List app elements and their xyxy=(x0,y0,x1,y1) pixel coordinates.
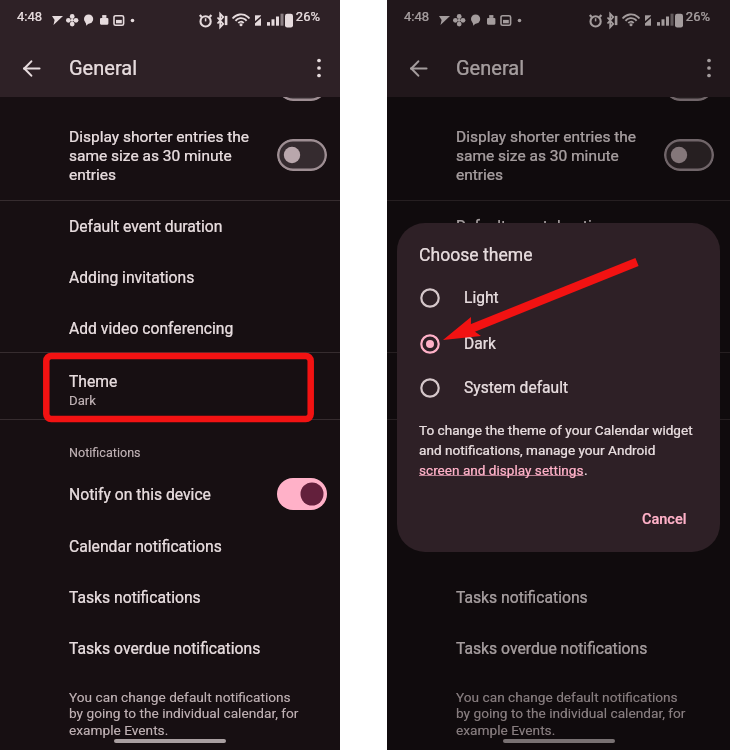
staticText: Dark xyxy=(69,393,96,408)
staticText: Adding invitations xyxy=(456,268,582,286)
button[interactable]: Tasks notifications xyxy=(387,573,730,624)
staticText: Tasks overdue notifications xyxy=(456,639,648,657)
button[interactable]: Default event duration xyxy=(387,201,730,252)
button[interactable]: Theme xyxy=(387,353,730,421)
staticText: Calendar notifications xyxy=(69,537,222,555)
staticText: Add video conferencing xyxy=(69,319,234,337)
staticText: Default event duration xyxy=(456,217,610,235)
staticText: Theme xyxy=(69,372,118,390)
button[interactable]: Add video conferencing xyxy=(387,303,730,353)
staticText: 26% xyxy=(387,9,710,24)
button[interactable]: Back xyxy=(7,44,55,92)
staticText: Display shorter entries the same size as… xyxy=(456,128,642,184)
staticText: General xyxy=(69,56,138,79)
staticText: Default event duration xyxy=(69,217,223,235)
staticText: Adding invitations xyxy=(69,268,195,286)
staticText: Notifications xyxy=(69,445,141,460)
button[interactable]: Light xyxy=(397,276,720,320)
button[interactable]: Default event duration xyxy=(0,201,340,252)
button[interactable]: Toggle off xyxy=(664,69,714,101)
button[interactable]: screen and display settings xyxy=(419,462,584,478)
staticText: System default xyxy=(464,379,569,397)
button[interactable]: Calendar notifications xyxy=(387,523,730,573)
button[interactable]: Adding invitations xyxy=(387,252,730,303)
staticText: Dark xyxy=(464,335,496,353)
button[interactable]: Dark xyxy=(397,322,720,366)
staticText: Theme xyxy=(456,372,505,390)
staticText: Notifications xyxy=(456,445,528,460)
staticText: Add video conferencing xyxy=(456,319,621,337)
button[interactable]: Adding invitations xyxy=(0,252,340,303)
button[interactable]: Tasks notifications xyxy=(0,573,340,624)
button[interactable]: More options xyxy=(297,46,341,90)
button[interactable]: Toggle off xyxy=(664,139,714,171)
staticText: Choose theme xyxy=(419,245,533,266)
button[interactable]: Toggle on xyxy=(277,478,327,510)
staticText: Dark xyxy=(456,393,483,408)
staticText: Tasks notifications xyxy=(456,588,588,606)
staticText: 26% xyxy=(0,9,320,24)
staticText: You can change default notifications by … xyxy=(69,689,302,739)
staticText: Notify on this device xyxy=(69,485,211,503)
staticText: Tasks notifications xyxy=(69,588,201,606)
staticText: To change the theme of your Calendar wid… xyxy=(419,422,705,458)
button[interactable]: Calendar notifications xyxy=(0,523,340,573)
staticText: Cancel xyxy=(642,511,687,528)
button[interactable]: Tasks overdue notifications xyxy=(387,624,730,675)
button[interactable]: More options xyxy=(687,46,730,90)
button[interactable]: Display shorter entries the same size as… xyxy=(0,104,340,199)
button[interactable]: Notify on this device xyxy=(0,473,340,519)
button[interactable]: Back xyxy=(394,44,442,92)
button[interactable]: System default xyxy=(397,366,720,410)
button[interactable]: Add video conferencing xyxy=(0,303,340,353)
staticText: Light xyxy=(464,289,499,307)
staticText: 4:48 xyxy=(404,9,430,24)
button[interactable]: Cancel xyxy=(631,505,698,534)
staticText: Tasks overdue notifications xyxy=(69,639,261,657)
staticText: . xyxy=(584,462,588,478)
staticText: Calendar notifications xyxy=(456,537,609,555)
staticText: You can change default notifications by … xyxy=(456,689,689,739)
button[interactable]: Notify on this device xyxy=(387,473,730,519)
button[interactable]: Toggle off xyxy=(277,139,327,171)
staticText: Display shorter entries the same size as… xyxy=(69,128,255,184)
button[interactable]: Toggle off xyxy=(277,69,327,101)
staticText: 4:48 xyxy=(17,9,43,24)
staticText: General xyxy=(456,56,525,79)
button[interactable]: Theme xyxy=(0,353,340,421)
button[interactable]: Display shorter entries the same size as… xyxy=(387,104,730,199)
button[interactable]: Tasks overdue notifications xyxy=(0,624,340,675)
